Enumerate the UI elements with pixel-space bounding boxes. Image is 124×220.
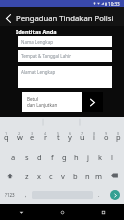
staticText: 10:33: [108, 1, 120, 7]
button[interactable]: Tempat & Tanggal Lahir: [18, 50, 112, 62]
staticText: Pengaduan Tindakan Polisi: [16, 13, 114, 23]
staticText: 5: [57, 131, 60, 136]
button[interactable]: 9: [100, 128, 112, 147]
staticText: 4: [44, 131, 47, 136]
staticText: b: [73, 171, 78, 181]
staticText: r: [44, 132, 48, 142]
button[interactable]: a: [7, 147, 20, 166]
button[interactable]: 4: [39, 128, 52, 147]
staticText: 1: [5, 131, 8, 136]
button[interactable]: x: [33, 166, 45, 185]
button[interactable]: 6: [64, 128, 76, 147]
staticText: Betul dan Lanjutkan: [27, 96, 58, 108]
button[interactable]: m: [93, 166, 105, 185]
staticText: a: [11, 152, 16, 162]
staticText: Alamat Lengkap: [21, 69, 56, 75]
button[interactable]: j: [82, 147, 94, 166]
staticText: i: [93, 132, 95, 142]
staticText: o: [104, 132, 109, 142]
staticText: v: [61, 171, 65, 181]
button[interactable]: Recents: [83, 204, 124, 220]
staticText: 6: [69, 131, 72, 136]
staticText: ,: [25, 191, 27, 198]
staticText: q: [4, 132, 9, 142]
staticText: Identitas Anda: [16, 28, 57, 35]
button[interactable]: 1: [0, 128, 13, 147]
button[interactable]: f: [46, 147, 58, 166]
staticText: 7: [81, 131, 84, 136]
staticText: d: [37, 152, 42, 162]
staticText: s: [25, 152, 29, 162]
staticText: p: [116, 132, 121, 142]
staticText: l: [111, 152, 113, 162]
button[interactable]: ,: [20, 185, 32, 204]
staticText: Tempat & Tanggal Lahir: [21, 53, 72, 59]
button[interactable]: 2: [13, 128, 26, 147]
button[interactable]: Nama Lengkap: [18, 36, 112, 47]
button[interactable]: 0: [112, 128, 124, 147]
button[interactable]: ?123: [0, 185, 20, 204]
button[interactable]: 5: [52, 128, 64, 147]
button[interactable]: z: [20, 166, 33, 185]
staticText: Nama Lengkap: [21, 39, 53, 45]
staticText: c: [49, 171, 53, 181]
staticText: e: [30, 132, 35, 142]
staticText: u: [80, 132, 85, 142]
staticText: 0: [117, 131, 120, 136]
staticText: 2: [18, 131, 21, 136]
staticText: ?123: [5, 192, 15, 198]
button[interactable]: c: [45, 166, 57, 185]
staticText: f: [51, 152, 54, 162]
button[interactable]: Home: [42, 204, 83, 220]
staticText: 8: [93, 131, 96, 136]
staticText: 3: [31, 131, 34, 136]
staticText: m: [95, 171, 103, 181]
staticText: z: [25, 171, 29, 181]
button[interactable]: h: [70, 147, 82, 166]
button[interactable]: 8: [88, 128, 100, 147]
button[interactable]: .: [93, 185, 105, 204]
staticText: 9: [105, 131, 108, 136]
button[interactable]: s: [20, 147, 33, 166]
staticText: j: [87, 152, 89, 162]
button[interactable]: Enter: [110, 190, 120, 200]
button[interactable]: d: [33, 147, 46, 166]
button[interactable]: v: [57, 166, 69, 185]
staticText: n: [85, 171, 90, 181]
staticText: h: [74, 152, 79, 162]
button[interactable]: Back: [0, 204, 42, 220]
staticText: t: [57, 132, 60, 142]
button[interactable]: 7: [76, 128, 88, 147]
button[interactable]: n: [81, 166, 93, 185]
button[interactable]: 3: [26, 128, 39, 147]
staticText: w: [17, 132, 23, 142]
button[interactable]: Betul dan Lanjutkan: [22, 92, 103, 112]
staticText: y: [68, 132, 72, 142]
staticText: .: [98, 191, 100, 198]
staticText: g: [62, 152, 67, 162]
button[interactable]: Alamat Lengkap: [18, 66, 112, 88]
staticText: x: [37, 171, 41, 181]
button[interactable]: Backspace: [105, 166, 124, 185]
staticText: k: [98, 152, 103, 162]
button[interactable]: b: [69, 166, 81, 185]
button[interactable]: Shift: [0, 166, 20, 185]
button[interactable]: k: [94, 147, 106, 166]
button[interactable]: l: [106, 147, 118, 166]
button[interactable]: Back: [0, 7, 16, 26]
button[interactable]: g: [58, 147, 70, 166]
